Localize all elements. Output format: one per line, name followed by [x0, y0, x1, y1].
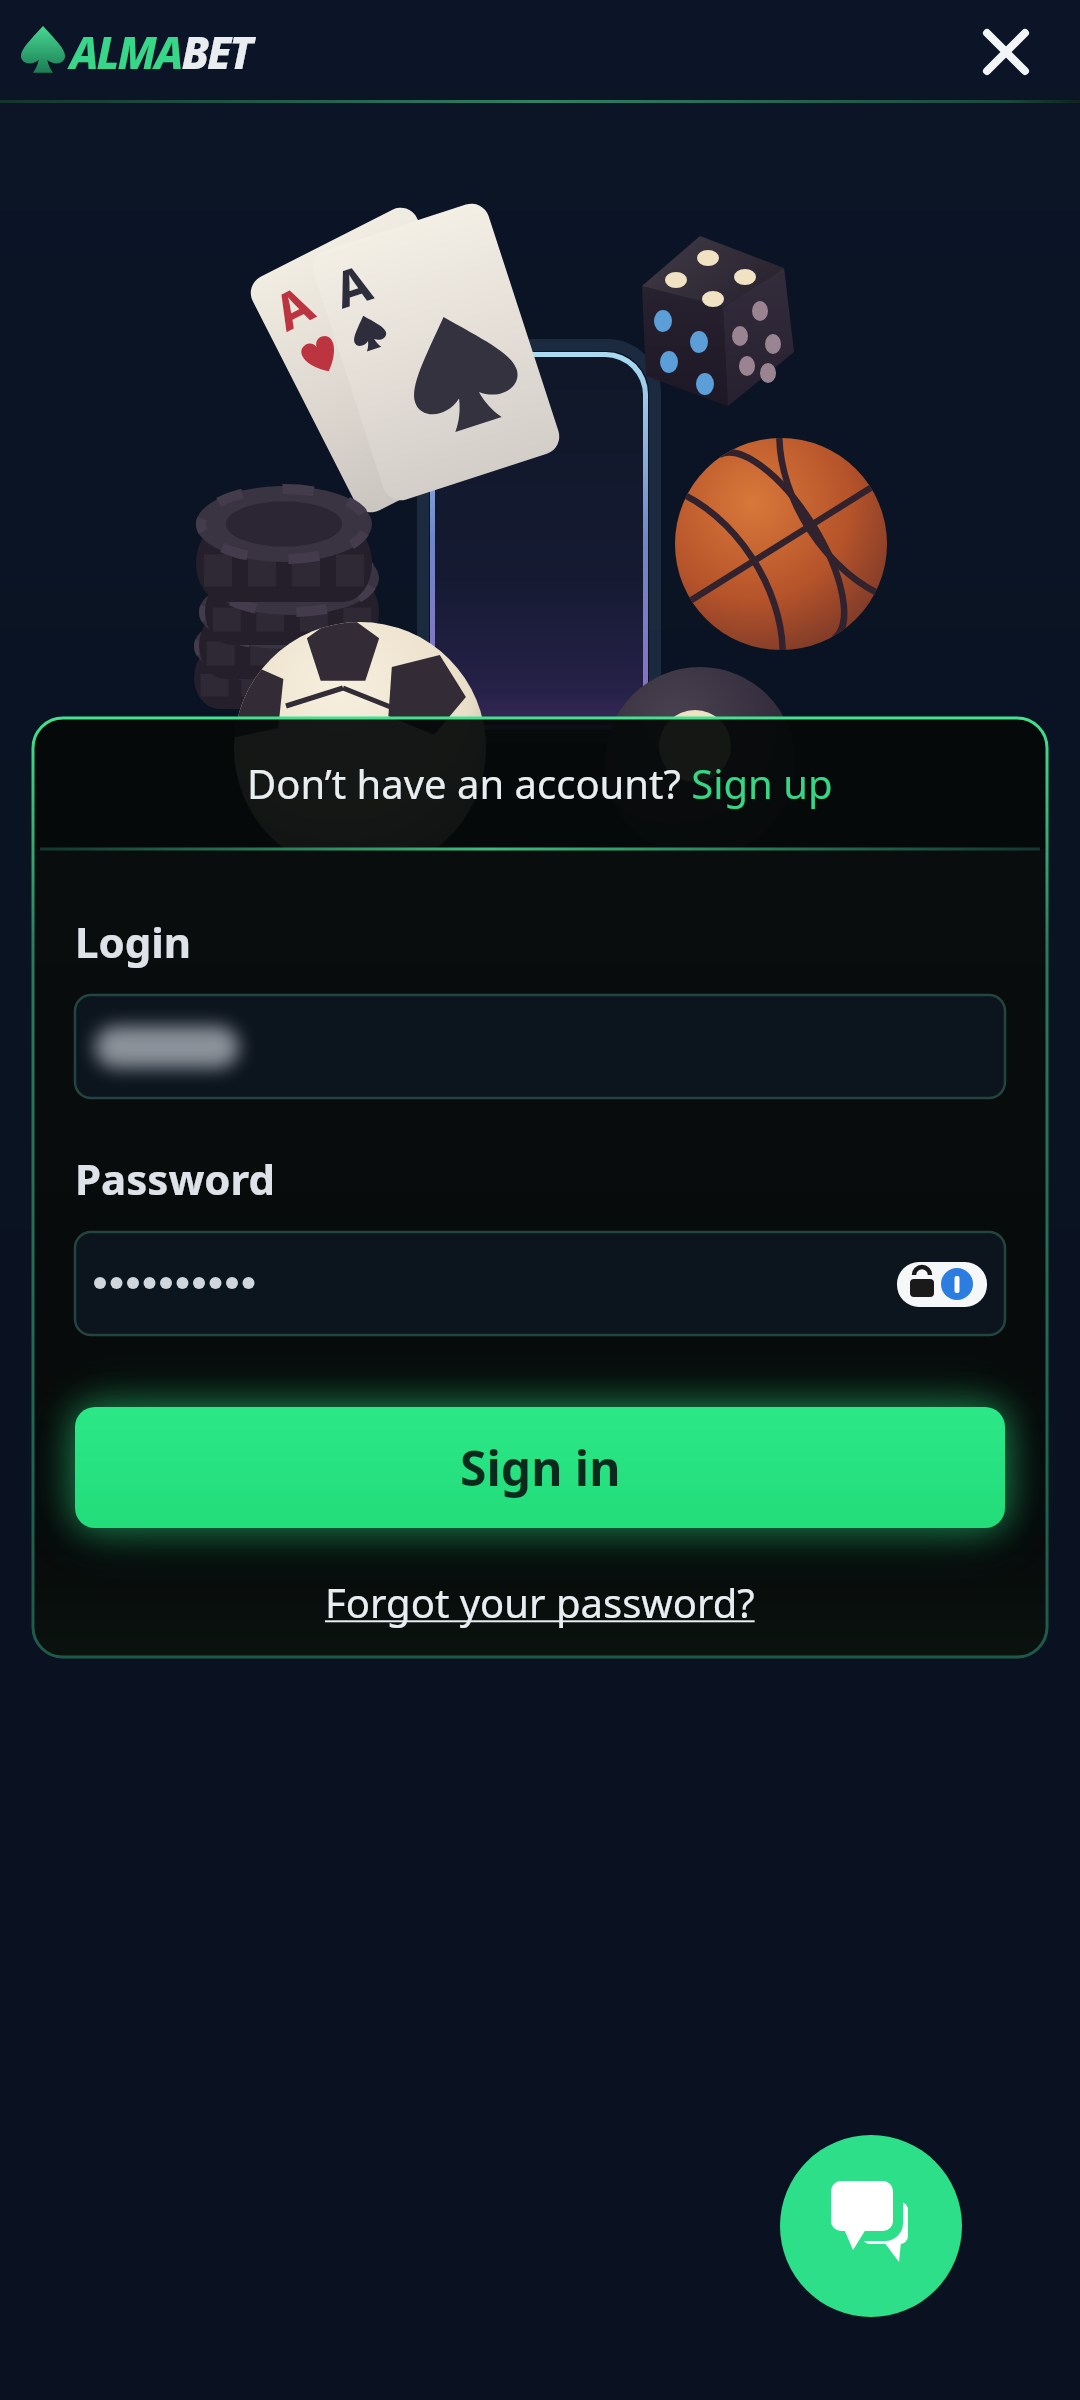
button[interactable] — [982, 28, 1030, 76]
staticText: ALMABET — [70, 22, 252, 82]
button[interactable] — [75, 995, 1005, 1098]
staticText: Sign in — [460, 1435, 621, 1500]
staticText: Don’t have an account? Sign up — [247, 756, 833, 810]
button[interactable] — [75, 1232, 1005, 1335]
button[interactable]: ALMABET — [18, 21, 248, 83]
button[interactable] — [780, 2135, 962, 2317]
staticText: Login — [75, 913, 192, 970]
staticText: Password — [75, 1150, 276, 1207]
button[interactable]: Forgot your password? — [325, 1575, 755, 1629]
button[interactable]: Don’t have an account? Sign up — [33, 718, 1047, 848]
button[interactable]: Sign in — [75, 1407, 1005, 1528]
